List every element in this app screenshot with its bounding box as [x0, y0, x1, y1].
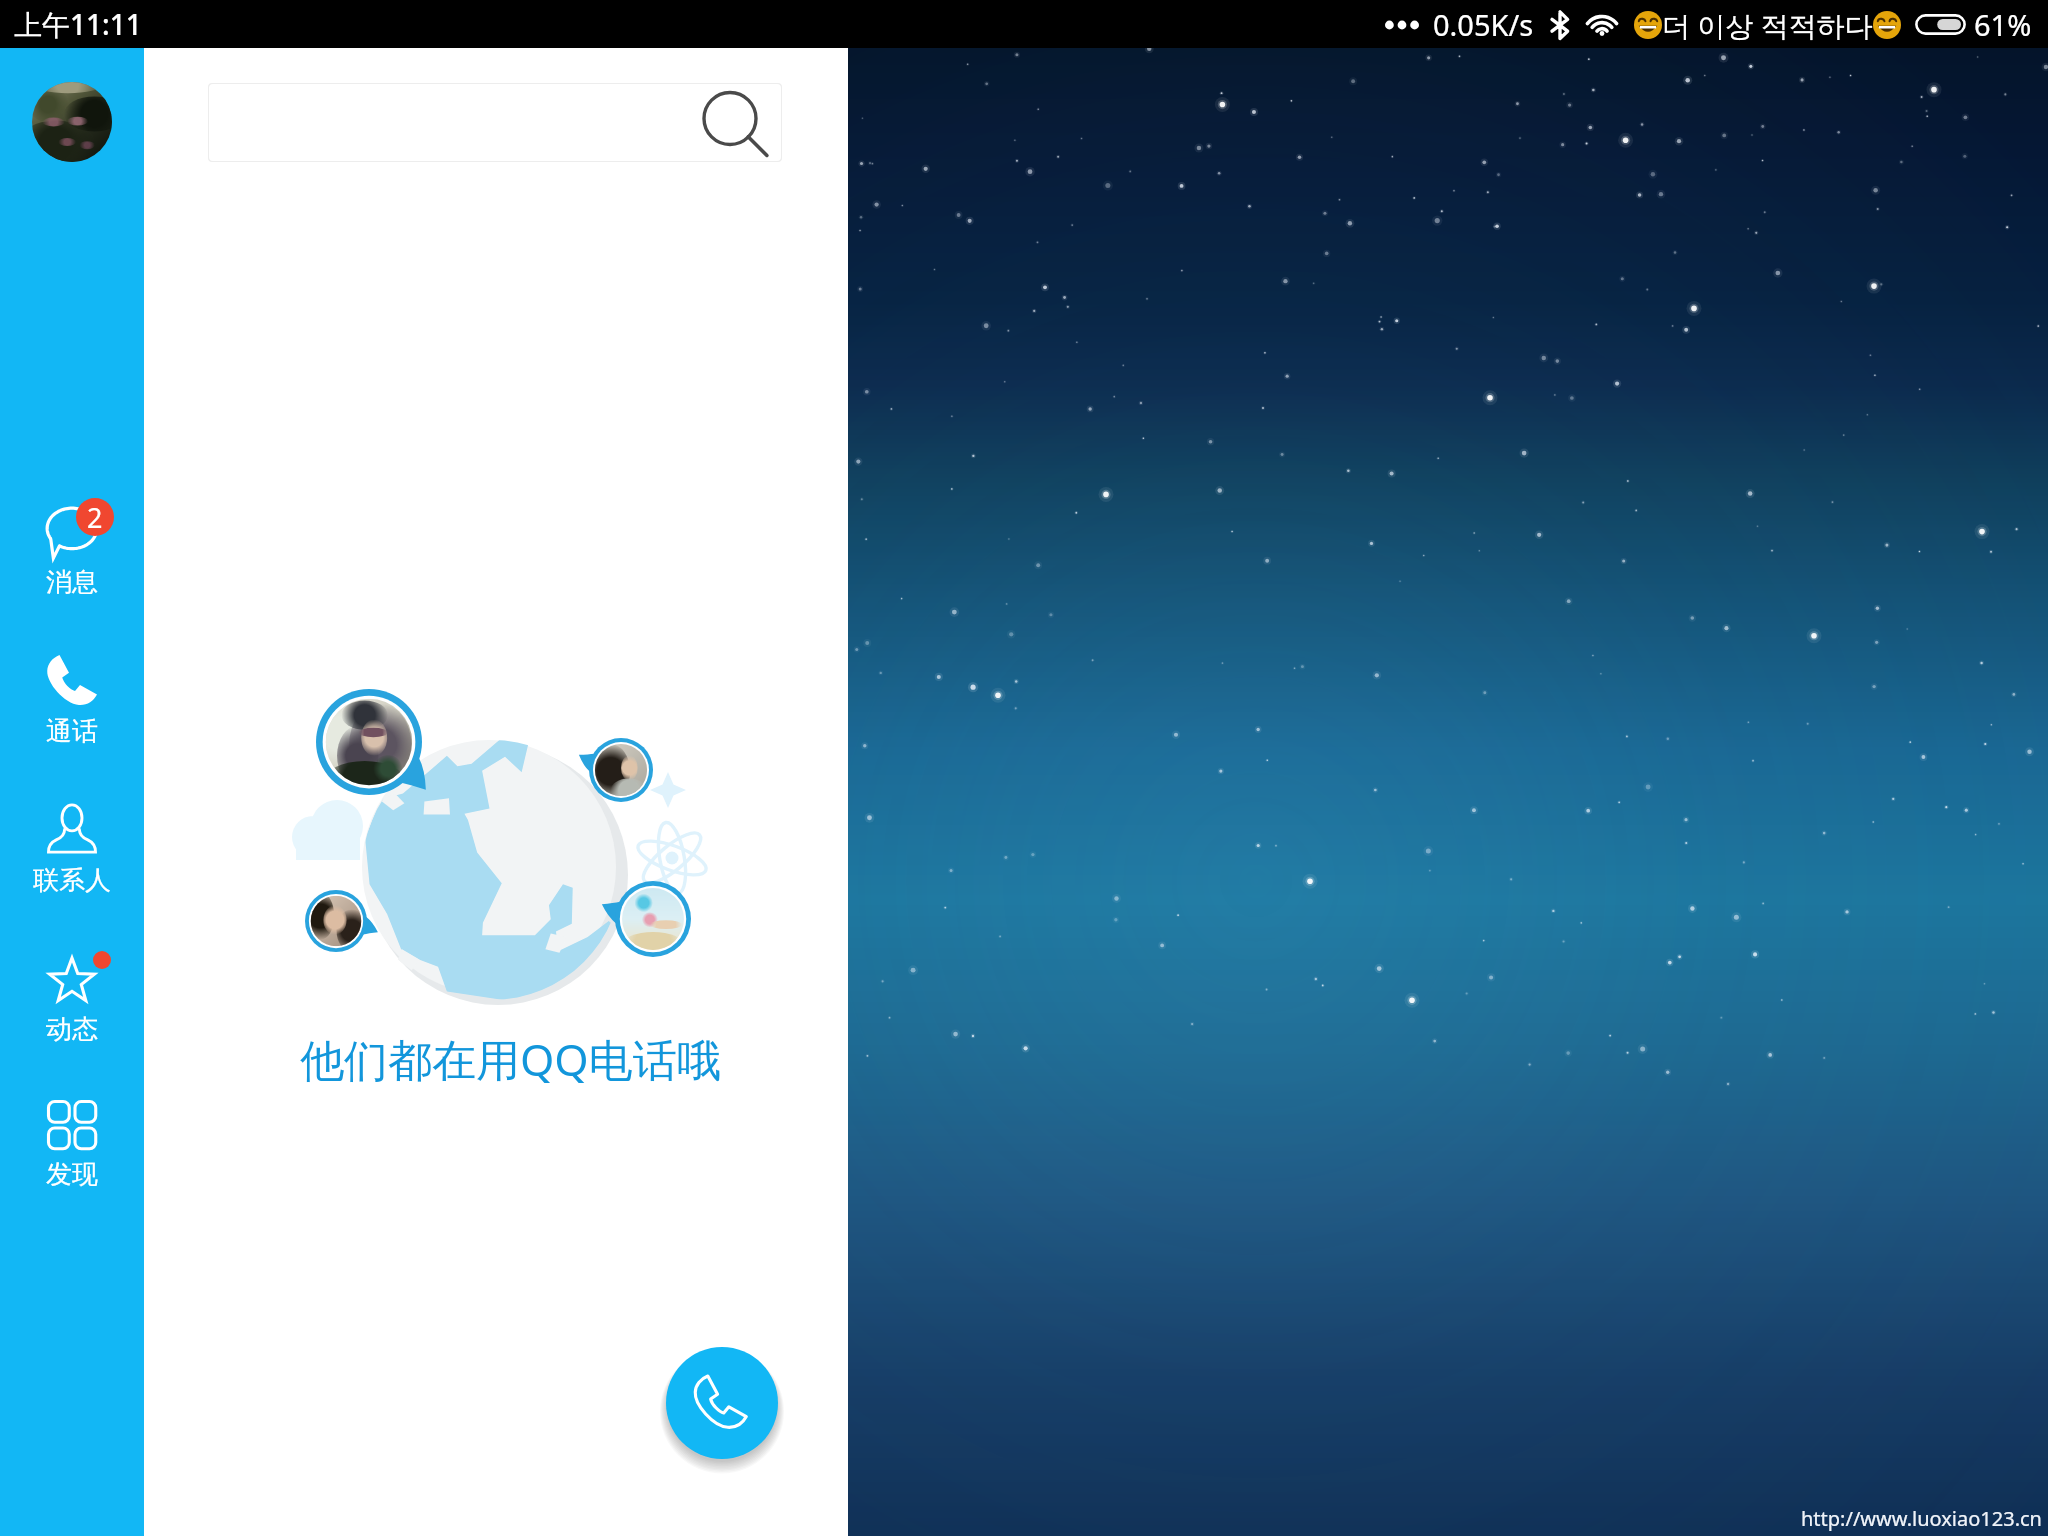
button[interactable]: 消息: [0, 492, 144, 608]
staticText: 通话: [46, 715, 98, 748]
button[interactable]: 发现: [0, 1086, 144, 1202]
staticText: 动态: [46, 1013, 98, 1046]
staticText: 0.05K/s: [1433, 5, 1534, 44]
staticText: 发现: [46, 1158, 98, 1191]
staticText: 上午11:11: [14, 5, 142, 43]
button[interactable]: Search: [208, 83, 782, 162]
staticText: 他们都在用QQ电话哦: [300, 1029, 721, 1089]
button[interactable]: 联系人: [0, 790, 144, 906]
button[interactable]: 动态: [0, 940, 144, 1056]
staticText: 더 이상 적적하다: [1662, 6, 1873, 44]
staticText: 消息: [46, 566, 98, 599]
button[interactable]: New call: [666, 1347, 778, 1459]
staticText: 2: [87, 499, 103, 536]
staticText: http://www.luoxiao123.cn: [1801, 1505, 2042, 1532]
button[interactable]: Profile avatar: [32, 82, 112, 162]
staticText: 61%: [1974, 5, 2032, 44]
staticText: 联系人: [33, 864, 111, 897]
button[interactable]: 通话: [0, 641, 144, 757]
